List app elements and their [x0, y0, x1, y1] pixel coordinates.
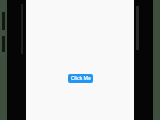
- staticText: Click Me: [71, 75, 91, 82]
- button[interactable]: Click Me: [68, 74, 93, 83]
